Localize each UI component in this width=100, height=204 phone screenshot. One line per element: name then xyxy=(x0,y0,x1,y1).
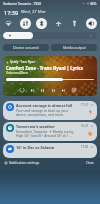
button[interactable]: Airplane mode xyxy=(53,18,64,29)
button[interactable]: Account storage is almost full xyxy=(3,101,97,120)
button[interactable]: Spotify · Trans Nyani xyxy=(3,56,97,96)
button[interactable]: Media output xyxy=(51,44,97,51)
button[interactable]: Device secured xyxy=(3,44,49,51)
button[interactable]: Notification settings xyxy=(3,160,41,166)
staticText: Spotify · Trans Nyani xyxy=(10,60,35,64)
staticText: Tomorrow's weather xyxy=(16,124,56,129)
staticText: 46% xyxy=(90,2,97,6)
button[interactable]: Play xyxy=(51,88,56,93)
button[interactable]: Sound xyxy=(86,18,97,29)
staticText: Kinondoni, Tanzania ☀ Mostly sunny, xyxy=(16,129,74,133)
staticText: 16° in Dar es Salaam xyxy=(16,145,55,150)
staticText: Vodacom Tanzania - TIGO xyxy=(3,2,42,6)
button[interactable]: Internet xyxy=(3,18,14,29)
button[interactable]: Tomorrow's weather xyxy=(3,122,97,141)
button[interactable]: Cast xyxy=(71,87,77,93)
staticText: 17:31 xyxy=(81,103,89,107)
button[interactable]: Next xyxy=(30,88,35,93)
button[interactable]: Pause xyxy=(40,88,45,93)
staticText: 17:00 xyxy=(81,145,89,149)
staticText: Device secured xyxy=(13,45,39,50)
button[interactable]: Brightness xyxy=(3,32,97,39)
staticText: Comfort Zone - Trans Nyani | Lyrics Vide… xyxy=(6,65,94,71)
staticText: Media output xyxy=(63,45,86,50)
staticText: Clear xyxy=(86,161,94,165)
staticText: Unknown Album xyxy=(6,71,28,75)
button[interactable]: Skip xyxy=(61,88,66,93)
staticText: 17:39 xyxy=(4,9,19,16)
button[interactable]: Replay xyxy=(19,87,25,93)
button[interactable]: Flashlight xyxy=(69,18,80,29)
staticText: Wed, 27 Mar xyxy=(21,9,46,15)
button[interactable]: 16° in Dar es Salaam xyxy=(3,143,97,158)
staticText: High 33°, low 26°. Around 33° at 1 ... xyxy=(16,133,72,137)
staticText: device, save photos, and more. xyxy=(16,112,64,116)
staticText: Account storage is almost full xyxy=(16,103,73,108)
staticText: You need storage to back up your xyxy=(16,108,69,112)
staticText: Notification settings xyxy=(9,161,40,165)
button[interactable]: Mobile data xyxy=(20,18,31,29)
button[interactable]: Bluetooth xyxy=(36,18,47,29)
button[interactable]: Clear xyxy=(83,160,97,166)
staticText: 16:41 xyxy=(81,124,89,128)
